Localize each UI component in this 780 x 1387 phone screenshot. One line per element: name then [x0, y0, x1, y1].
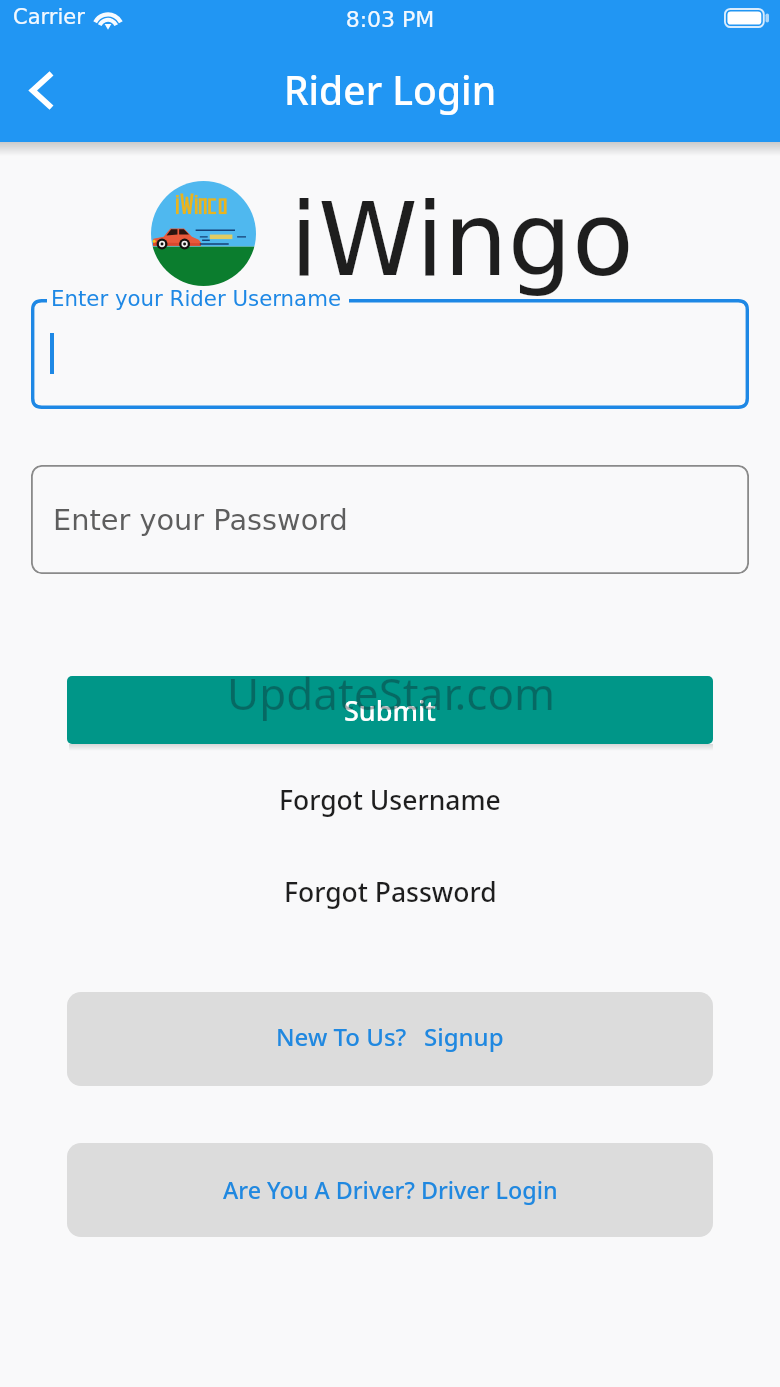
staticText: UpdateStar.com [227, 676, 556, 723]
button[interactable]: Are You A Driver? Driver Login [67, 1143, 713, 1237]
staticText: Carrier [13, 5, 85, 29]
staticText: Enter your Rider Username [51, 286, 342, 311]
staticText: Forgot Password [284, 874, 497, 910]
staticText: 8:03 PM [0, 7, 780, 33]
button[interactable]: Submit [67, 676, 713, 744]
staticText: iWingo [290, 181, 634, 299]
staticText: Signup [424, 1020, 504, 1053]
staticText: Are You A Driver? Driver Login [223, 1174, 558, 1206]
button[interactable]: Enter your Password [31, 465, 749, 574]
button[interactable]: Forgot Password [272, 869, 509, 915]
staticText: Enter your Password [53, 503, 348, 537]
staticText: New To Us? [276, 1020, 407, 1053]
button[interactable]: New To Us? [67, 992, 713, 1086]
staticText: Forgot Username [279, 782, 501, 818]
staticText: Rider Login [0, 63, 780, 116]
button[interactable]: Forgot Username [267, 777, 513, 823]
staticText: Submit [344, 692, 436, 729]
button[interactable] [31, 299, 749, 409]
button[interactable]: Back [8, 50, 74, 130]
